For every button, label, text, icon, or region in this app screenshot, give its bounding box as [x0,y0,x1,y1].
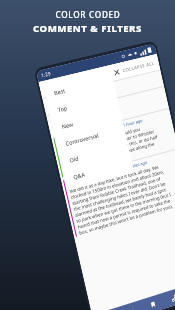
staticText: COMMENT & FILTERS [33,22,142,35]
button[interactable]: Q&A [63,153,133,188]
button[interactable]: New [51,103,122,137]
staticText: starting from Rubble Creek Trailhead, on… [72,176,161,206]
staticText: clocked in 1500m in elevation and about … [70,168,165,200]
other: Collapse all [113,68,121,77]
staticText: to park when we got there in the morning… [76,191,171,224]
button[interactable]: hurricanesurfing [52,109,175,180]
staticText: [score hidden] 42 minutes ago [91,160,148,181]
button[interactable]: Old [59,136,130,171]
staticText: 1:29 [40,70,51,79]
staticText: Top [57,104,68,114]
staticText: New [61,120,74,131]
button[interactable]: ago [42,70,164,115]
staticText: COLOR CODED [55,9,121,20]
staticText: bus, so maybe this won't be a problem fo… [78,203,174,236]
staticText: I'm heading there early Sept. Would you [59,126,141,153]
staticText: Best [53,87,66,97]
staticText: Q&A [73,170,87,181]
staticText: heard that now a permit is required to t… [77,197,171,230]
button[interactable]: Link [166,289,175,306]
staticText: the most challenging hikes I ever did. D… [73,180,166,212]
button[interactable]: Controversial [55,120,126,154]
button[interactable]: Next [123,302,139,310]
staticText: COLLAPSE ALL [122,60,155,73]
staticText: way? [65,168,76,176]
staticText: hurricanesurfing [58,131,94,146]
staticText: drive a full day thing and include this,… [62,133,158,164]
button[interactable]: Collapse all [38,54,160,98]
button[interactable]: '17 and it was [46,87,169,138]
staticText: [score hidden] 1 hour ago [94,118,143,136]
button[interactable]: Best [43,70,115,103]
staticText: SoberChef [67,175,90,187]
staticText: alarmed at the trailhead, we barely had … [74,186,167,218]
button[interactable]: Top [47,87,118,120]
button[interactable]: Previous [102,309,118,310]
staticText: recommend making the Vancouver to Whistl… [61,128,155,159]
staticText: day and opt for smaller stops/hikes alon… [63,140,155,170]
staticText: We did it as a day hike, but it took all… [69,164,159,194]
staticText: Controversial [65,131,99,148]
button[interactable]: SoberChef [61,149,175,239]
button[interactable]: Save [145,296,160,310]
staticText: Old [69,154,80,165]
